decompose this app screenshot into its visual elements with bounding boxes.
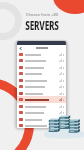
button[interactable] [17, 77, 66, 84]
button[interactable] [17, 96, 66, 103]
button[interactable] [17, 70, 66, 77]
button[interactable] [17, 109, 66, 116]
staticText: Choose from +80 [0, 12, 84, 17]
button[interactable] [17, 83, 66, 90]
staticText: SERVERS [12, 18, 72, 34]
button[interactable] [17, 116, 66, 123]
button[interactable]: Back [19, 47, 22, 50]
button[interactable] [17, 90, 66, 97]
button[interactable] [17, 103, 66, 110]
button[interactable] [17, 122, 66, 128]
button[interactable] [17, 57, 66, 64]
button[interactable] [17, 64, 66, 71]
button[interactable] [17, 51, 66, 58]
